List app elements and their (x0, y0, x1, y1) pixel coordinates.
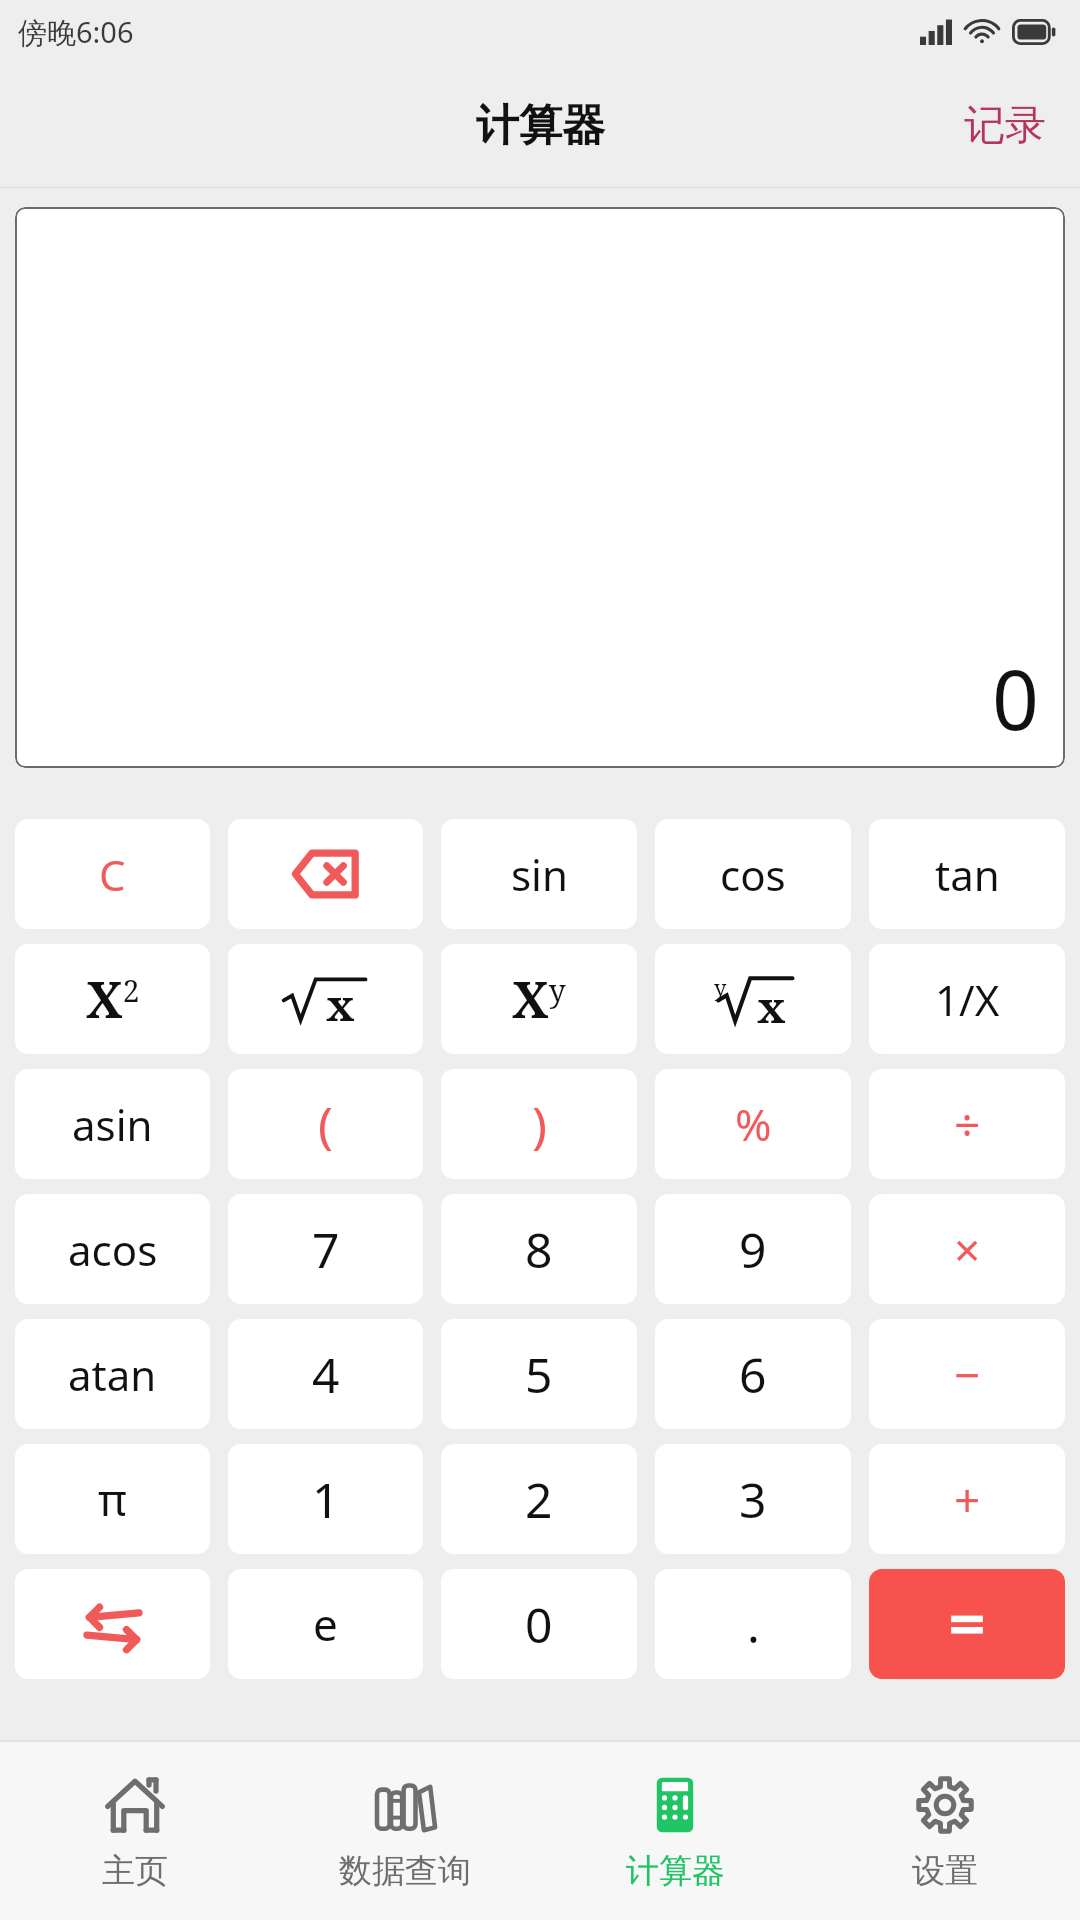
button[interactable]: sin (441, 819, 637, 929)
button[interactable]: 1/X (869, 944, 1065, 1054)
staticText: % (735, 1094, 772, 1154)
staticText: 2 (525, 1467, 553, 1532)
button[interactable]: Swap (15, 1569, 210, 1679)
button[interactable]: tan (869, 819, 1065, 929)
button[interactable]: 4 (228, 1319, 423, 1429)
staticText: y (714, 972, 727, 1002)
button[interactable]: ( (228, 1069, 423, 1179)
button[interactable]: x (228, 944, 423, 1054)
button[interactable]: Backspace (228, 819, 423, 929)
staticText: acos (68, 1221, 158, 1278)
staticText: 傍晚6:06 (18, 12, 134, 52)
staticText: ) (532, 1090, 547, 1158)
staticText: 0 (525, 1592, 553, 1657)
staticText: X2 (86, 965, 140, 1033)
button[interactable]: + (869, 1444, 1065, 1554)
staticText: 1/X (935, 971, 1000, 1028)
staticText: C (99, 846, 126, 903)
button[interactable]: 1 (228, 1444, 423, 1554)
staticText: 9 (739, 1217, 767, 1282)
staticText: atan (68, 1346, 157, 1403)
staticText: x (326, 974, 355, 1034)
button[interactable]: 数据查询 (270, 1742, 540, 1920)
button[interactable]: x (655, 944, 851, 1054)
staticText: − (954, 1343, 981, 1406)
staticText: ( (318, 1090, 333, 1158)
staticText: 7 (312, 1217, 340, 1282)
button[interactable] (869, 1569, 1065, 1679)
staticText: 8 (525, 1217, 553, 1282)
staticText: . (747, 1592, 760, 1657)
staticText: 0 (992, 642, 1039, 754)
staticText: 数据查询 (339, 1850, 471, 1892)
button[interactable]: e (228, 1569, 423, 1679)
staticText: x (757, 976, 786, 1036)
button[interactable]: atan (15, 1319, 210, 1429)
staticText: Xy (512, 965, 566, 1033)
staticText: cos (720, 846, 786, 903)
staticText: 计算器 (626, 1850, 725, 1892)
staticText: tan (935, 846, 1000, 903)
staticText: 设置 (912, 1850, 978, 1892)
button[interactable]: C (15, 819, 210, 929)
staticText: 主页 (102, 1850, 168, 1892)
staticText: × (954, 1218, 981, 1281)
button[interactable]: . (655, 1569, 851, 1679)
staticText: 1 (312, 1467, 340, 1532)
staticText: + (954, 1468, 981, 1531)
button[interactable]: 2 (441, 1444, 637, 1554)
button[interactable]: Xy (441, 944, 637, 1054)
button[interactable]: 9 (655, 1194, 851, 1304)
button[interactable]: ) (441, 1069, 637, 1179)
staticText: ÷ (954, 1093, 981, 1156)
staticText: asin (72, 1096, 153, 1153)
button[interactable]: acos (15, 1194, 210, 1304)
button[interactable]: 3 (655, 1444, 851, 1554)
staticText: 4 (312, 1342, 340, 1407)
button[interactable]: 计算器 (540, 1742, 810, 1920)
staticText: π (98, 1469, 127, 1529)
button[interactable]: cos (655, 819, 851, 929)
staticText: 6 (739, 1342, 767, 1407)
staticText: 3 (739, 1467, 767, 1532)
button[interactable]: 7 (228, 1194, 423, 1304)
staticText: sin (511, 846, 568, 903)
button[interactable]: 记录 (930, 82, 1080, 170)
staticText: 记录 (964, 100, 1046, 152)
button[interactable]: 8 (441, 1194, 637, 1304)
button[interactable]: X2 (15, 944, 210, 1054)
staticText: e (313, 1594, 338, 1654)
button[interactable]: ÷ (869, 1069, 1065, 1179)
button[interactable]: asin (15, 1069, 210, 1179)
button[interactable]: − (869, 1319, 1065, 1429)
button[interactable]: 6 (655, 1319, 851, 1429)
button[interactable]: 设置 (810, 1742, 1080, 1920)
staticText: 计算器 (476, 99, 605, 153)
button[interactable]: 5 (441, 1319, 637, 1429)
button[interactable]: 主页 (0, 1742, 270, 1920)
button[interactable]: × (869, 1194, 1065, 1304)
button[interactable]: 0 (441, 1569, 637, 1679)
staticText: 5 (525, 1342, 553, 1407)
button[interactable]: % (655, 1069, 851, 1179)
button[interactable]: π (15, 1444, 210, 1554)
